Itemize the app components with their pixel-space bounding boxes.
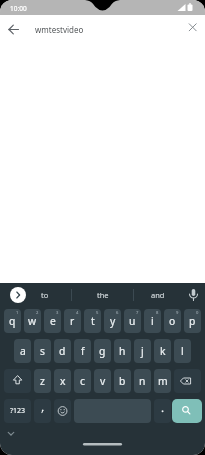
button[interactable]: z [34, 369, 51, 393]
staticText: b [119, 374, 126, 388]
button[interactable] [172, 399, 202, 423]
staticText: 0 [196, 310, 199, 316]
staticText: q [9, 314, 16, 328]
staticText: 6 [116, 310, 119, 316]
button[interactable] [10, 287, 26, 303]
button[interactable]: y [104, 309, 121, 333]
staticText: e [50, 314, 56, 328]
button[interactable]: k [154, 339, 171, 363]
staticText: wmtestvideo [35, 24, 84, 35]
button[interactable]: e [44, 309, 61, 333]
staticText: g [99, 344, 106, 358]
staticText: 5 [96, 310, 99, 316]
button[interactable]: wmtestvideo [0, 15, 205, 44]
staticText: to [41, 290, 49, 300]
staticText: x [60, 374, 66, 388]
button[interactable]: p [184, 309, 201, 333]
button[interactable]: d [54, 339, 71, 363]
button[interactable]: r [64, 309, 81, 333]
staticText: 1 [16, 310, 19, 316]
button[interactable]: b [114, 369, 131, 393]
button[interactable]: the [88, 283, 117, 307]
button[interactable] [54, 399, 71, 423]
staticText: and [151, 290, 165, 300]
staticText: j [141, 344, 144, 358]
button[interactable]: c [74, 369, 91, 393]
staticText: m [158, 374, 168, 388]
button[interactable]: n [134, 369, 151, 393]
button[interactable]: ?123 [4, 399, 31, 423]
staticText: w [28, 314, 37, 328]
staticText: c [80, 374, 85, 388]
staticText: i [151, 314, 154, 328]
staticText: p [189, 314, 196, 328]
button[interactable]: q [4, 309, 21, 333]
button[interactable]: a [14, 339, 31, 363]
staticText: 9 [176, 310, 179, 316]
button[interactable]: f [74, 339, 91, 363]
staticText: 4 [76, 310, 79, 316]
staticText: n [139, 374, 146, 388]
button[interactable]: x [54, 369, 71, 393]
staticText: 8 [156, 310, 159, 316]
staticText: k [160, 344, 166, 358]
button[interactable]: v [94, 369, 111, 393]
staticText: the [97, 290, 109, 300]
staticText: z [40, 374, 45, 388]
staticText: o [169, 314, 176, 328]
button[interactable]: w [24, 309, 41, 333]
button[interactable]: o [164, 309, 181, 333]
button[interactable]: l [174, 339, 191, 363]
staticText: u [129, 314, 136, 328]
button[interactable] [154, 399, 171, 423]
button[interactable] [34, 399, 51, 423]
button[interactable]: i [144, 309, 161, 333]
button[interactable]: g [94, 339, 111, 363]
staticText: ?123 [10, 406, 26, 416]
staticText: v [100, 374, 106, 388]
button[interactable]: u [124, 309, 141, 333]
button[interactable] [174, 369, 201, 393]
staticText: 10:00 [10, 4, 27, 13]
button[interactable]: to [31, 283, 59, 307]
button[interactable]: j [134, 339, 151, 363]
staticText: 3 [56, 310, 59, 316]
button[interactable]: and [144, 283, 172, 307]
staticText: d [59, 344, 66, 358]
staticText: a [20, 344, 26, 358]
staticText: f [81, 344, 85, 358]
staticText: r [70, 314, 75, 328]
button[interactable]: h [114, 339, 131, 363]
button[interactable]: t [84, 309, 101, 333]
button[interactable]: m [154, 369, 171, 393]
button[interactable] [4, 369, 31, 393]
staticText: 2 [36, 310, 39, 316]
staticText: 7 [136, 310, 139, 316]
staticText: y [110, 314, 116, 328]
button[interactable]: s [34, 339, 51, 363]
staticText: s [40, 344, 45, 358]
staticText: t [91, 314, 95, 328]
staticText: h [119, 344, 126, 358]
staticText: l [181, 344, 184, 358]
